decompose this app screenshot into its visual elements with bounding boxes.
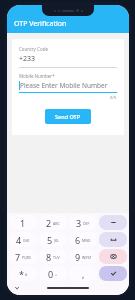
staticText: 0 — [48, 268, 54, 280]
button[interactable]: * — [9, 266, 37, 281]
staticText: JKL — [54, 238, 59, 243]
staticText: 7 — [15, 251, 21, 263]
staticText: OTP Verification — [14, 19, 67, 29]
button[interactable]: Backspace — [99, 249, 127, 264]
staticText: # — [25, 272, 28, 277]
staticText: WXYZ — [82, 255, 92, 260]
button[interactable]: 9 — [69, 249, 97, 264]
button[interactable]: 6 — [69, 232, 97, 247]
staticText: DEF — [83, 221, 90, 226]
button[interactable]: Space — [99, 232, 127, 247]
staticText: * — [19, 268, 24, 280]
button[interactable]: 7 — [9, 249, 37, 264]
staticText: 1 — [20, 217, 26, 229]
staticText: 9 — [75, 251, 81, 263]
staticText: 2 — [46, 217, 52, 229]
staticText: , — [82, 268, 85, 280]
button[interactable]: 4 — [9, 232, 37, 247]
button[interactable]: Send OTP — [45, 109, 91, 124]
staticText: 0/9 — [110, 95, 117, 100]
staticText: Please Enter Mobile Number — [20, 81, 108, 90]
staticText: ABC — [53, 221, 60, 226]
staticText: Send OTP — [55, 113, 81, 120]
staticText: +233 — [19, 54, 36, 64]
button[interactable]: Dash — [99, 215, 127, 230]
staticText: + — [55, 272, 58, 277]
button[interactable]: 0 — [39, 266, 67, 281]
staticText: 5 — [47, 234, 53, 246]
button[interactable]: 3 — [69, 215, 97, 230]
staticText: 3 — [76, 217, 82, 229]
staticText: TUV — [53, 255, 60, 260]
staticText: Country Code — [19, 46, 48, 52]
staticText: Mobile Number* — [19, 73, 55, 79]
staticText: 8 — [46, 251, 52, 263]
staticText: GHI — [23, 238, 30, 243]
button[interactable]: 1 — [9, 215, 37, 230]
staticText: 4 — [16, 234, 22, 246]
button[interactable]: 8 — [39, 249, 67, 264]
button[interactable]: , — [69, 266, 97, 281]
button[interactable]: 2 — [39, 215, 67, 230]
button[interactable]: 5 — [39, 232, 67, 247]
staticText: PQRS — [22, 255, 31, 260]
button[interactable]: Enter — [99, 266, 127, 281]
staticText: 6 — [75, 234, 81, 246]
staticText: MNO — [82, 238, 91, 243]
